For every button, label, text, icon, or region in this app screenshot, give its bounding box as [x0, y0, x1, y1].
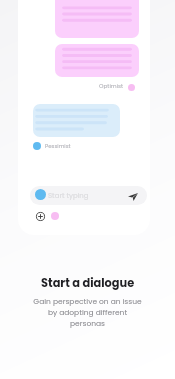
button[interactable] [33, 104, 120, 137]
button[interactable]: Optimist [99, 81, 135, 91]
staticText: Optimist [99, 82, 124, 90]
staticText: Gain perspective on an issue by adopting… [33, 296, 142, 329]
button[interactable]: Add [36, 212, 45, 221]
staticText: Pessimist [45, 142, 71, 150]
button[interactable] [30, 186, 147, 205]
button[interactable] [55, 44, 139, 77]
staticText: Start typing [48, 191, 89, 201]
button[interactable]: Send [128, 193, 138, 201]
button[interactable] [55, 0, 139, 38]
staticText: Start a dialogue [41, 275, 135, 291]
button[interactable]: Persona [51, 212, 59, 220]
button[interactable]: Pessimist [33, 141, 71, 150]
